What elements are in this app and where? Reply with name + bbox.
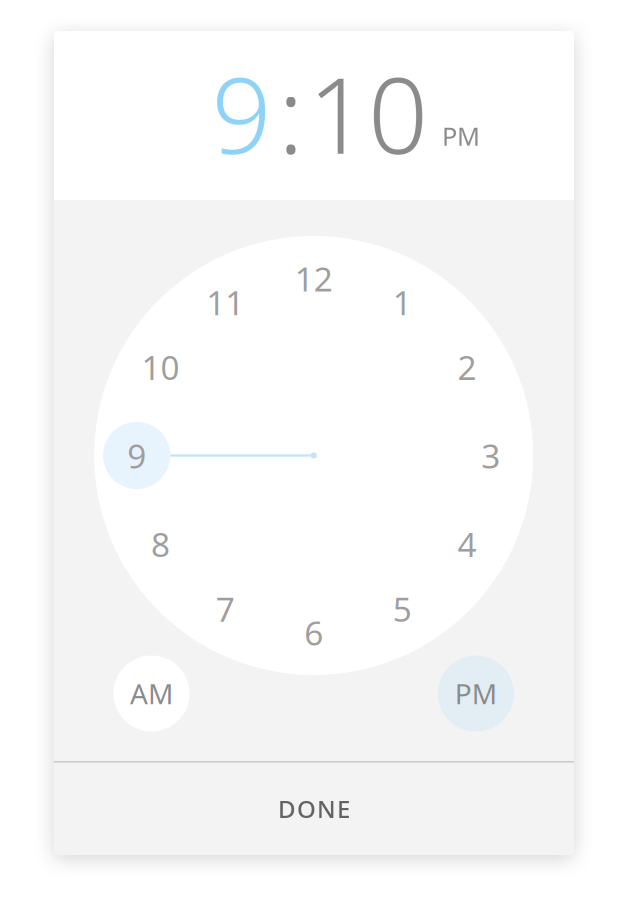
- button[interactable]: 3: [463, 427, 519, 483]
- staticText: 5: [393, 587, 412, 631]
- staticText: 3: [481, 433, 500, 478]
- staticText: DONE: [278, 793, 350, 825]
- staticText: PM: [442, 119, 480, 153]
- button[interactable]: 4: [439, 516, 495, 572]
- button[interactable]: 6: [286, 604, 342, 660]
- staticText: 8: [151, 522, 170, 566]
- staticText: 1: [393, 280, 412, 324]
- staticText: :: [278, 43, 304, 183]
- staticText: 10: [141, 345, 179, 389]
- button[interactable]: 10: [132, 339, 188, 395]
- button[interactable]: 7: [197, 581, 253, 637]
- button[interactable]: AM: [113, 655, 189, 731]
- button[interactable]: 11: [197, 274, 253, 330]
- staticText: 7: [216, 587, 235, 631]
- button[interactable]: PM: [438, 655, 514, 731]
- staticText: 4: [457, 522, 476, 566]
- staticText: 9: [127, 433, 146, 478]
- staticText: PM: [455, 675, 497, 712]
- button[interactable]: 1: [374, 274, 430, 330]
- staticText: 10: [308, 43, 428, 183]
- button[interactable]: 5: [374, 581, 430, 637]
- button[interactable]: 8: [132, 516, 188, 572]
- button[interactable]: PM: [435, 115, 487, 157]
- button[interactable]: 9: [205, 39, 277, 187]
- button[interactable]: 10: [302, 39, 434, 187]
- staticText: 12: [295, 256, 333, 301]
- staticText: 9: [211, 43, 271, 183]
- button[interactable]: 2: [439, 339, 495, 395]
- staticText: 11: [206, 280, 244, 324]
- button[interactable]: 12: [286, 250, 342, 306]
- staticText: 2: [457, 345, 476, 389]
- staticText: AM: [130, 675, 173, 712]
- button[interactable]: 9: [109, 427, 165, 483]
- staticText: 6: [304, 610, 323, 655]
- button[interactable]: DONE: [54, 762, 574, 855]
